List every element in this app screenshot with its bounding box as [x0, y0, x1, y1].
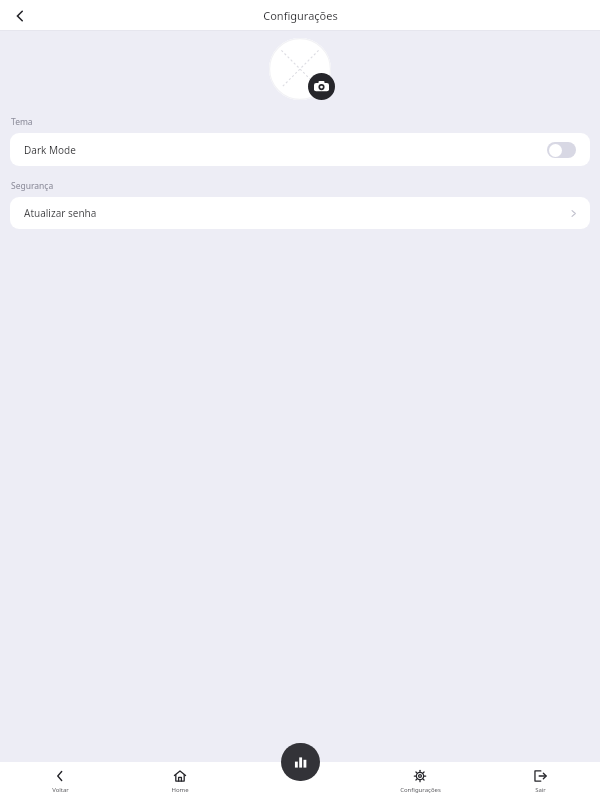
staticText: Dark Mode — [24, 143, 76, 157]
button[interactable]: Back — [6, 2, 34, 30]
staticText: Tema — [11, 116, 33, 128]
button[interactable]: Statistics — [281, 743, 320, 781]
staticText: Configurações — [400, 786, 441, 794]
staticText: Voltar — [52, 786, 69, 794]
staticText: Sair — [535, 786, 546, 794]
button[interactable]: Dark Mode toggle — [547, 142, 576, 158]
staticText: Home — [171, 786, 189, 794]
button[interactable]: Dark Mode — [10, 133, 590, 166]
button[interactable]: Home — [120, 762, 240, 800]
button[interactable]: Sair — [480, 762, 600, 800]
button[interactable]: Voltar — [0, 762, 120, 800]
staticText: Configurações — [263, 8, 338, 23]
staticText: Segurança — [11, 180, 54, 192]
staticText: Atualizar senha — [24, 206, 97, 220]
button[interactable]: Take photo — [308, 73, 335, 100]
button[interactable]: Change profile photo — [269, 38, 331, 100]
button[interactable]: Configurações — [360, 762, 480, 800]
button[interactable]: Atualizar senha — [10, 197, 590, 229]
